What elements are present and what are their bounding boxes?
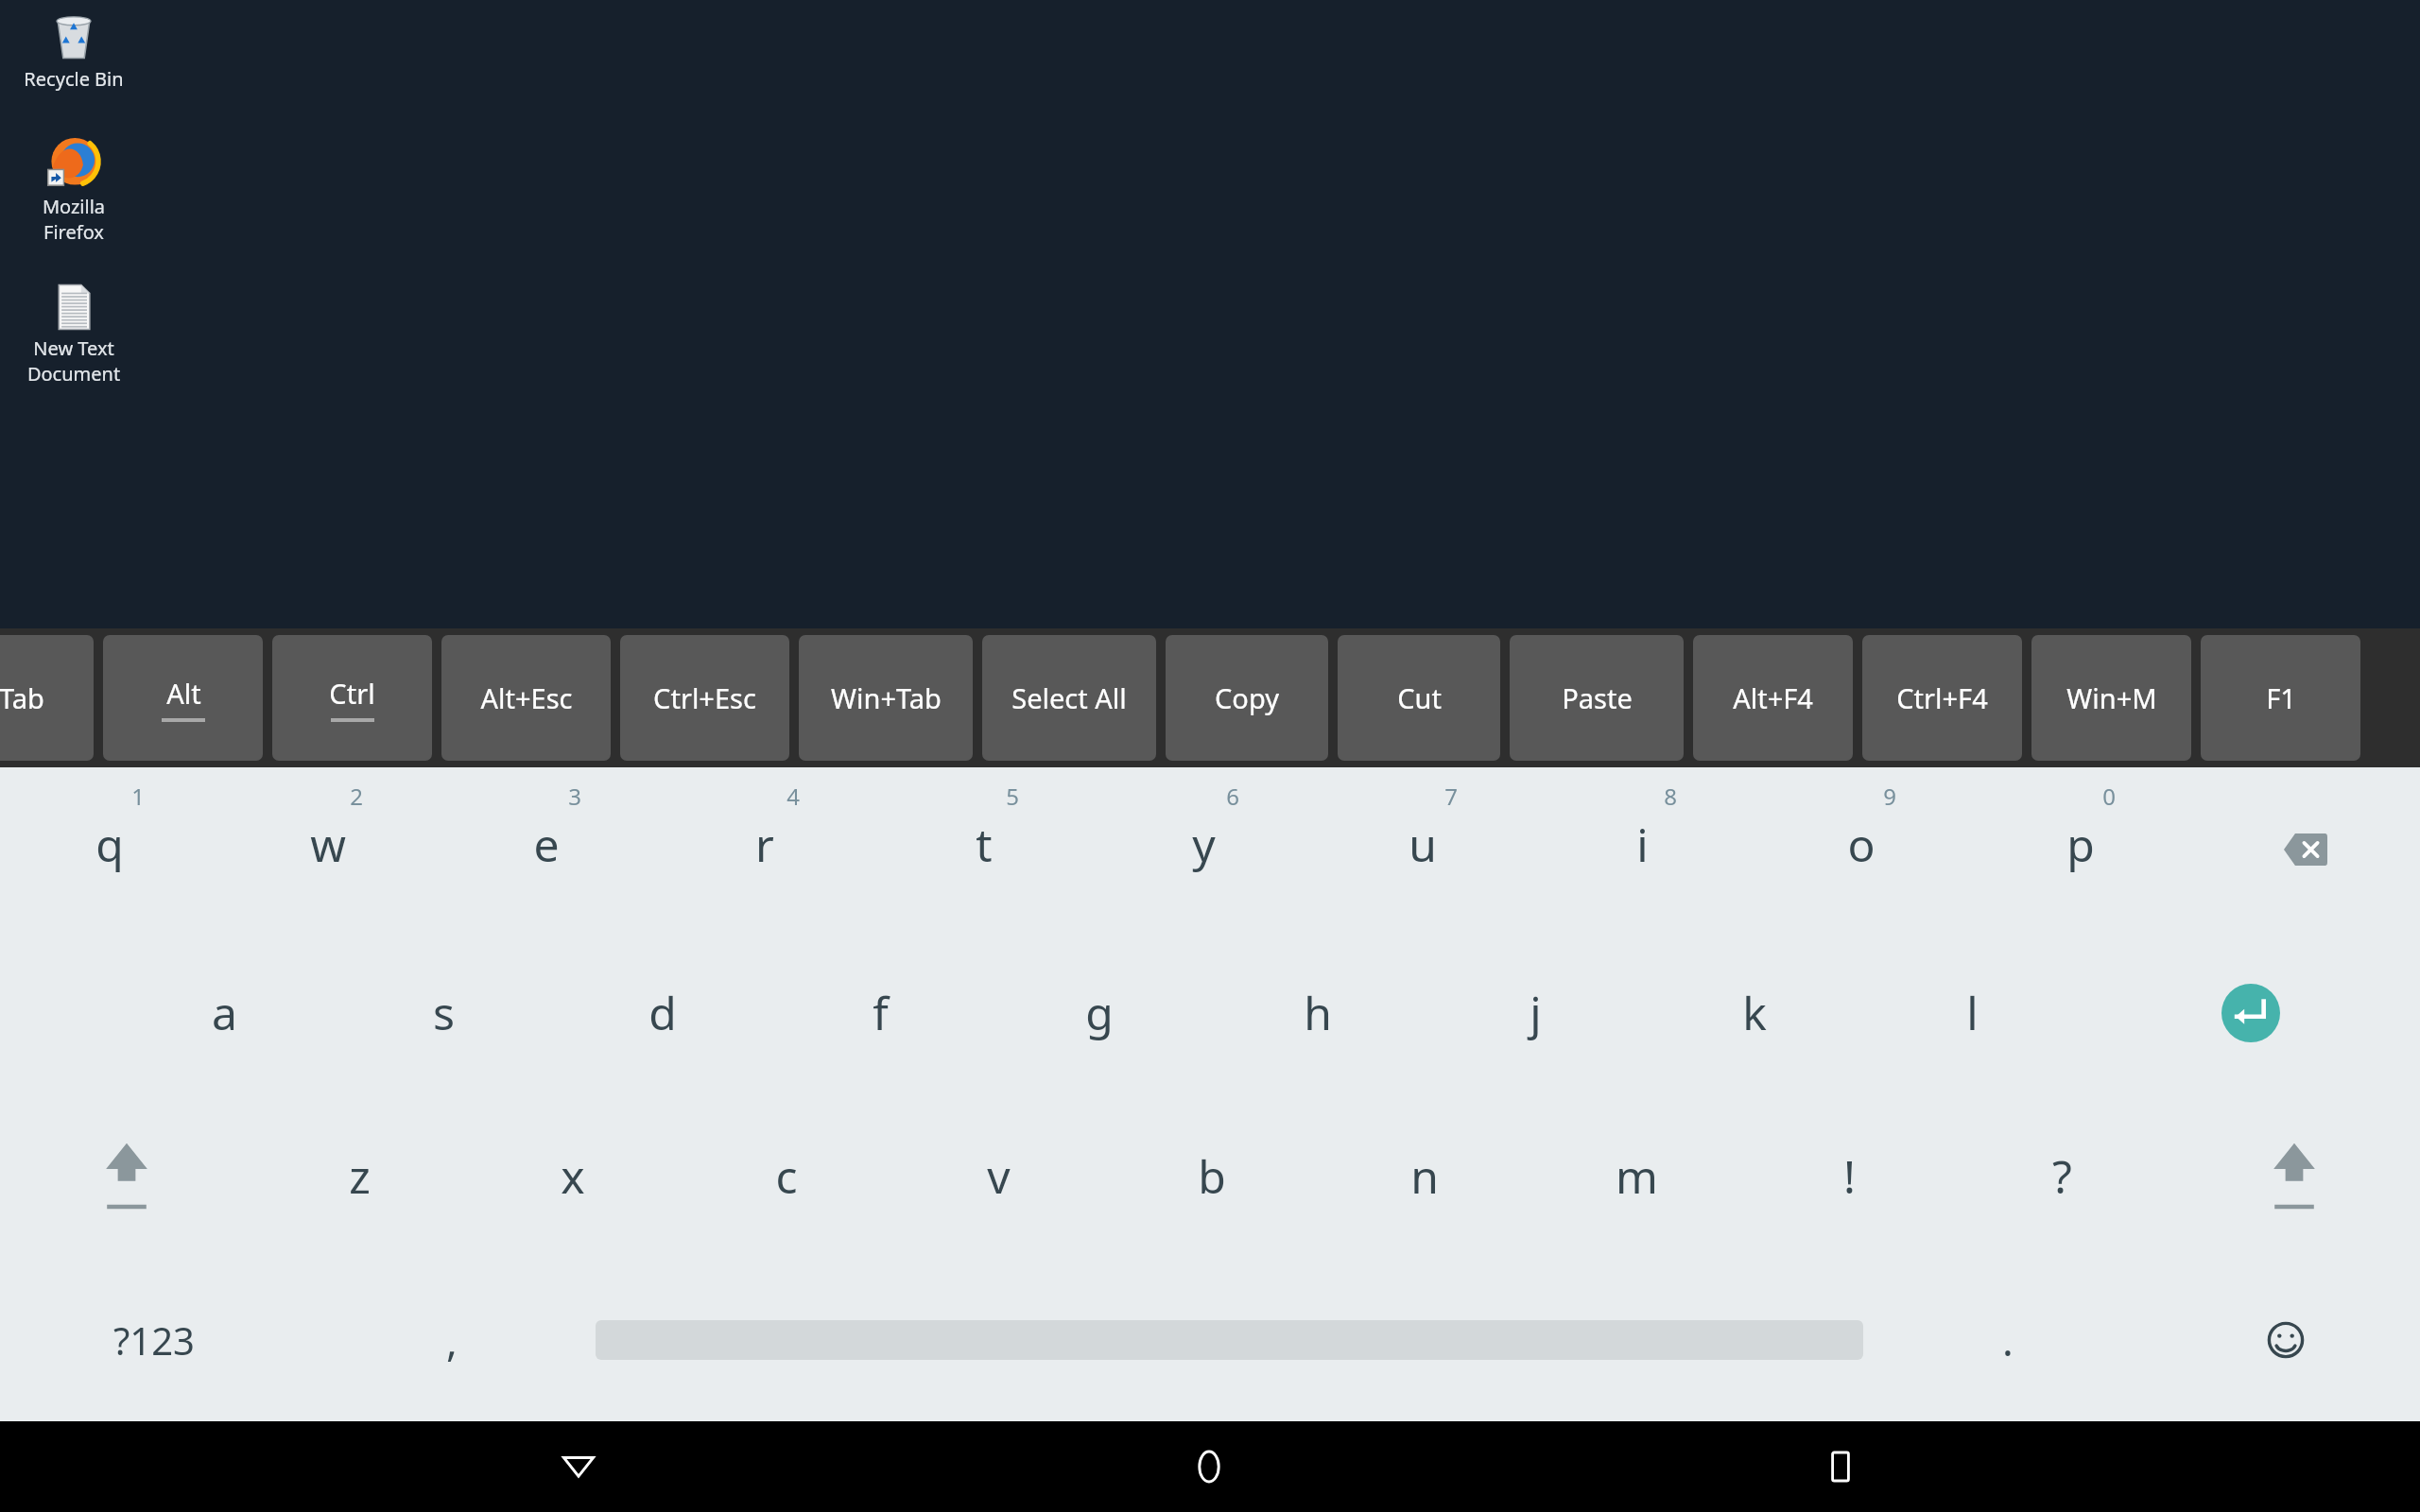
staticText: c	[775, 1145, 798, 1207]
staticText: Paste	[1562, 679, 1633, 716]
button[interactable]: Mozilla	[13, 133, 134, 245]
staticText: Cut	[1397, 679, 1442, 716]
button[interactable]: Shift	[0, 1094, 252, 1258]
staticText: Win+Tab	[831, 679, 942, 716]
staticText: Alt+Esc	[480, 679, 573, 716]
button[interactable]: 1	[0, 767, 218, 931]
staticText: 3	[568, 781, 581, 812]
button[interactable]: Emoji	[2152, 1258, 2420, 1421]
staticText: 9	[1883, 781, 1896, 812]
button[interactable]: 8	[1532, 767, 1752, 931]
button[interactable]: n	[1318, 1094, 1530, 1258]
button[interactable]: Alt+Esc	[441, 635, 611, 761]
button[interactable]: Tab	[0, 635, 94, 761]
staticText: Ctrl+Esc	[653, 679, 756, 716]
staticText: Document	[13, 361, 134, 387]
button[interactable]: m	[1530, 1094, 1743, 1258]
staticText: F1	[2266, 679, 2296, 716]
button[interactable]: 4	[655, 767, 874, 931]
button[interactable]: 9	[1752, 767, 1971, 931]
button[interactable]: Copy	[1166, 635, 1328, 761]
button[interactable]: Ctrl	[272, 635, 432, 761]
staticText: b	[1198, 1145, 1226, 1207]
button[interactable]: ?123	[0, 1258, 307, 1421]
button[interactable]: Enter	[2082, 931, 2420, 1094]
staticText: Copy	[1215, 679, 1279, 716]
button[interactable]: Select All	[982, 635, 1156, 761]
staticText: 5	[1006, 781, 1019, 812]
staticText: e	[533, 814, 560, 875]
staticText: ?123	[113, 1314, 195, 1366]
button[interactable]: Ctrl+F4	[1862, 635, 2022, 761]
staticText: u	[1409, 814, 1437, 875]
staticText: 6	[1226, 781, 1239, 812]
button[interactable]: k	[1645, 931, 1863, 1094]
button[interactable]: a	[114, 931, 334, 1094]
button[interactable]: x	[466, 1094, 680, 1258]
button[interactable]: F1	[2201, 635, 2360, 761]
button[interactable]: .	[1863, 1258, 2152, 1421]
button[interactable]: Recycle Bin	[13, 9, 134, 92]
staticText: .	[2002, 1312, 2014, 1368]
staticText: Alt	[166, 675, 201, 712]
button[interactable]: Home	[1157, 1421, 1261, 1512]
button[interactable]: j	[1426, 931, 1645, 1094]
button[interactable]: Ctrl+Esc	[620, 635, 789, 761]
staticText: d	[648, 982, 677, 1043]
button[interactable]: z	[252, 1094, 466, 1258]
staticText: l	[1966, 982, 1979, 1043]
staticText: Ctrl	[329, 675, 375, 712]
staticText: Select All	[1011, 679, 1127, 716]
button[interactable]: 2	[218, 767, 437, 931]
button[interactable]: 5	[874, 767, 1094, 931]
button[interactable]: 7	[1313, 767, 1532, 931]
button[interactable]: Alt+F4	[1693, 635, 1853, 761]
button[interactable]: g	[990, 931, 1208, 1094]
staticText: 0	[2102, 781, 2116, 812]
staticText: 7	[1444, 781, 1458, 812]
staticText: n	[1410, 1145, 1439, 1207]
button[interactable]: ,	[307, 1258, 596, 1421]
button[interactable]: d	[553, 931, 771, 1094]
button[interactable]: Shift	[2169, 1094, 2420, 1258]
button[interactable]: 0	[1971, 767, 2190, 931]
button[interactable]: Backspace	[2190, 767, 2420, 931]
button[interactable]	[596, 1258, 1863, 1421]
button[interactable]: Alt	[103, 635, 263, 761]
button[interactable]: Win+M	[2031, 635, 2191, 761]
button[interactable]: ?	[1956, 1094, 2169, 1258]
staticText: v	[987, 1145, 1011, 1207]
staticText: Alt+F4	[1733, 679, 1813, 716]
button[interactable]: New Text	[13, 281, 134, 387]
button[interactable]: Recent apps	[1789, 1421, 1893, 1512]
button[interactable]: h	[1208, 931, 1426, 1094]
button[interactable]: Paste	[1510, 635, 1684, 761]
button[interactable]: Back	[527, 1421, 631, 1512]
button[interactable]: Cut	[1338, 635, 1500, 761]
button[interactable]: b	[1105, 1094, 1318, 1258]
button[interactable]: s	[334, 931, 553, 1094]
button[interactable]: l	[1863, 931, 2082, 1094]
staticText: New Text	[13, 335, 134, 361]
staticText: t	[976, 814, 993, 875]
staticText: s	[433, 982, 455, 1043]
staticText: h	[1304, 982, 1332, 1043]
staticText: ?	[2052, 1145, 2072, 1207]
staticText: z	[349, 1145, 371, 1207]
button[interactable]: 6	[1094, 767, 1313, 931]
staticText: Firefox	[13, 219, 134, 245]
button[interactable]: f	[771, 931, 990, 1094]
button[interactable]: v	[892, 1094, 1105, 1258]
staticText: k	[1742, 982, 1767, 1043]
staticText: w	[310, 814, 346, 875]
staticText: 2	[350, 781, 363, 812]
staticText: ,	[446, 1312, 458, 1368]
staticText: x	[561, 1145, 585, 1207]
staticText: f	[873, 982, 889, 1043]
button[interactable]: c	[680, 1094, 892, 1258]
staticText: 4	[786, 781, 800, 812]
button[interactable]: !	[1743, 1094, 1956, 1258]
button[interactable]: Win+Tab	[799, 635, 973, 761]
button[interactable]: 3	[437, 767, 655, 931]
staticText: 8	[1664, 781, 1677, 812]
